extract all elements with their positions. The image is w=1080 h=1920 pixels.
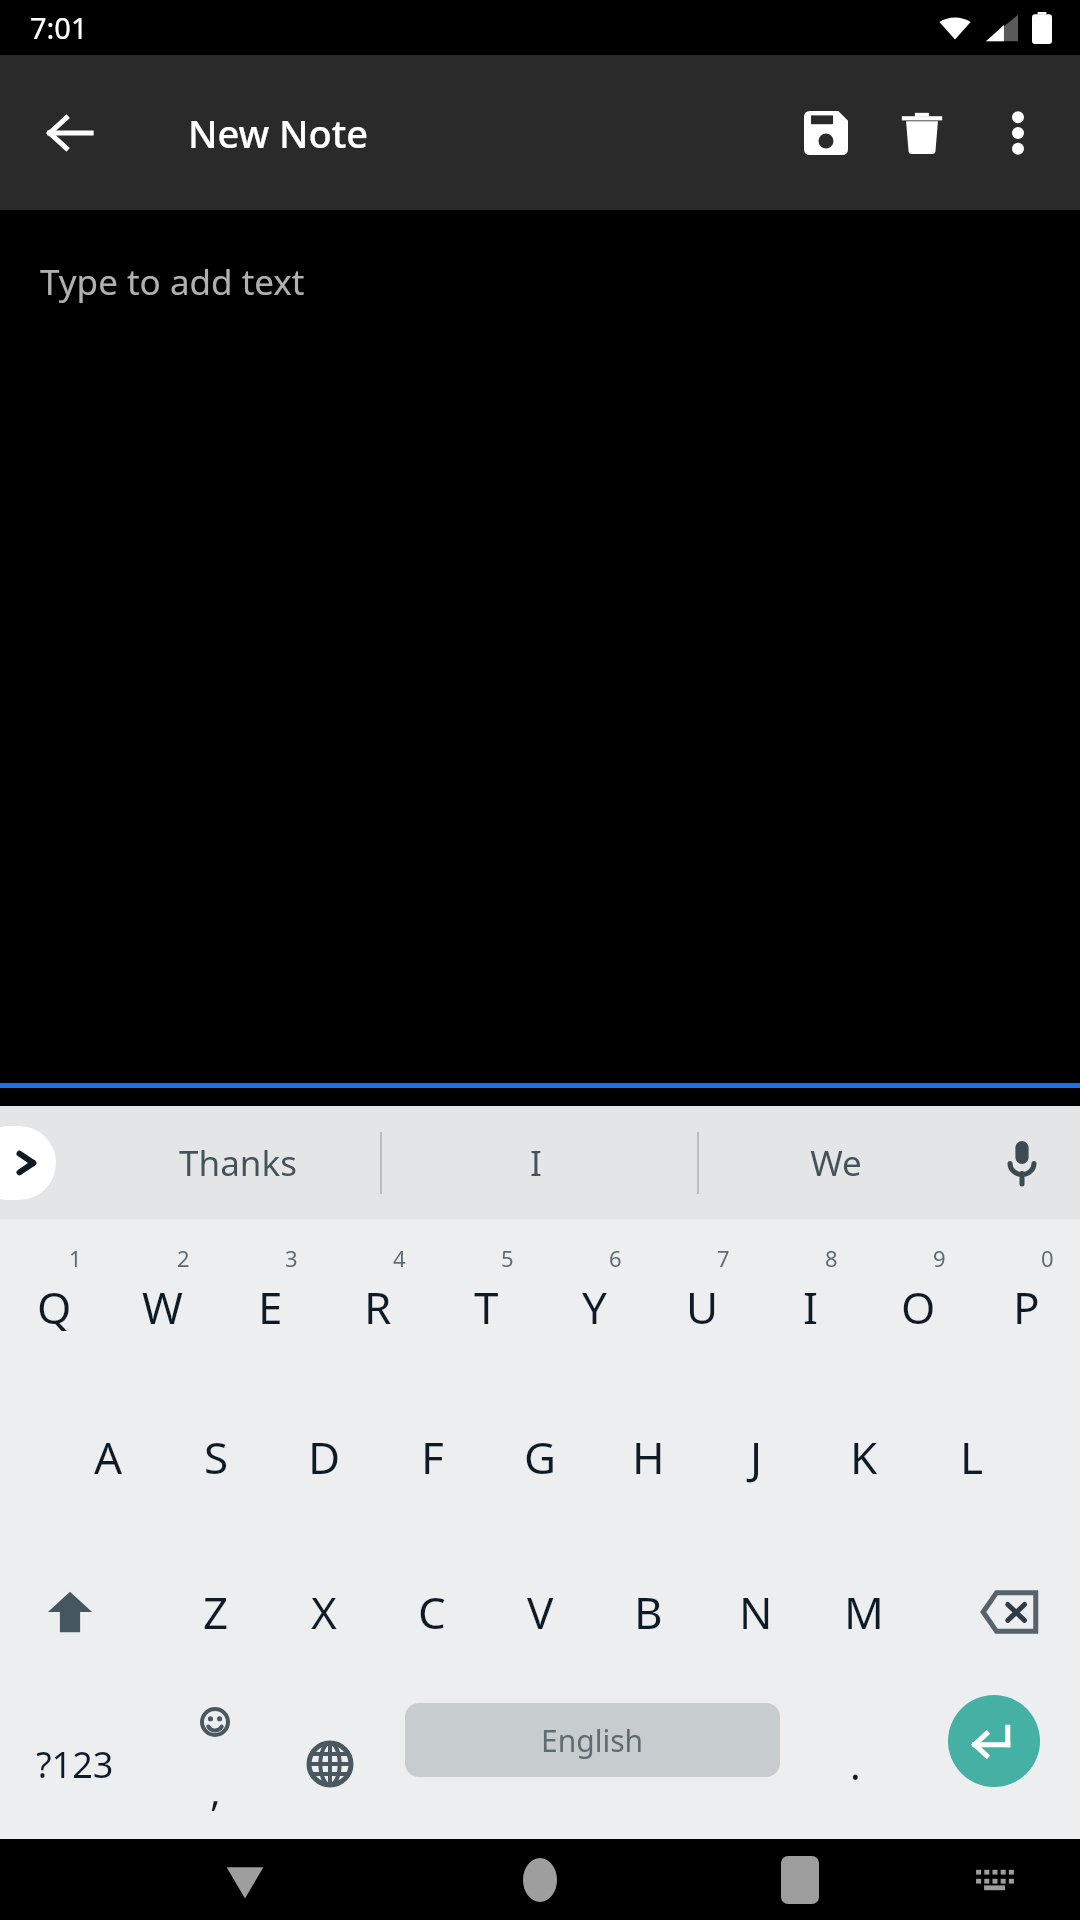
button[interactable]: 8 xyxy=(756,1219,864,1379)
staticText: Thanks xyxy=(179,1139,297,1187)
staticText: 8 xyxy=(825,1243,838,1273)
button[interactable]: S xyxy=(162,1379,270,1534)
staticText: 7:01 xyxy=(30,8,88,47)
staticText: X xyxy=(311,1582,337,1642)
staticText: A xyxy=(94,1427,123,1487)
button[interactable]: Expand toolbar xyxy=(0,1126,56,1200)
staticText: 6 xyxy=(609,1243,622,1273)
staticText: ?123 xyxy=(36,1740,114,1789)
button[interactable]: A xyxy=(54,1379,162,1534)
button[interactable]: Emoji and comma xyxy=(160,1689,270,1839)
staticText: 9 xyxy=(933,1243,946,1273)
button[interactable]: X xyxy=(270,1534,378,1689)
button[interactable]: Save xyxy=(778,85,874,181)
button[interactable]: Back xyxy=(30,93,110,173)
button[interactable]: B xyxy=(594,1534,702,1689)
button[interactable]: 7 xyxy=(648,1219,756,1379)
staticText: , xyxy=(210,1763,221,1817)
staticText: I xyxy=(530,1139,542,1187)
staticText: T xyxy=(474,1277,499,1337)
button[interactable]: Z xyxy=(162,1534,270,1689)
button[interactable]: Home xyxy=(490,1839,590,1920)
staticText: W xyxy=(142,1277,183,1337)
staticText: Type to add text xyxy=(40,258,305,306)
staticText: 4 xyxy=(393,1243,406,1273)
button[interactable]: . xyxy=(800,1689,910,1839)
button[interactable]: Voice input xyxy=(984,1125,1060,1201)
staticText: Z xyxy=(203,1582,229,1642)
staticText: M xyxy=(844,1582,884,1642)
staticText: English xyxy=(541,1720,644,1761)
button[interactable]: Recent apps xyxy=(750,1839,850,1920)
staticText: B xyxy=(634,1582,663,1642)
staticText: New Note xyxy=(188,107,369,159)
button[interactable]: Type to add text xyxy=(0,210,1080,1088)
button[interactable]: Switch keyboard xyxy=(950,1839,1040,1920)
staticText: 3 xyxy=(285,1243,298,1273)
button[interactable]: C xyxy=(378,1534,486,1689)
button[interactable]: More options xyxy=(970,85,1066,181)
button[interactable]: 2 xyxy=(108,1219,216,1379)
staticText: . xyxy=(850,1737,861,1791)
staticText: O xyxy=(901,1277,936,1337)
button[interactable]: G xyxy=(486,1379,594,1534)
staticText: 1 xyxy=(69,1243,82,1273)
button[interactable]: L xyxy=(918,1379,1026,1534)
button[interactable]: 5 xyxy=(432,1219,540,1379)
staticText: I xyxy=(803,1277,818,1337)
staticText: U xyxy=(686,1277,719,1337)
button[interactable]: N xyxy=(702,1534,810,1689)
button[interactable]: D xyxy=(270,1379,378,1534)
staticText: S xyxy=(204,1427,229,1487)
button[interactable]: Backspace xyxy=(940,1534,1080,1689)
button[interactable]: 4 xyxy=(324,1219,432,1379)
staticText: F xyxy=(421,1427,444,1487)
staticText: K xyxy=(850,1427,878,1487)
staticText: L xyxy=(960,1427,984,1487)
button[interactable]: 6 xyxy=(540,1219,648,1379)
staticText: 2 xyxy=(177,1243,190,1273)
staticText: 7 xyxy=(717,1243,730,1273)
button[interactable]: J xyxy=(702,1379,810,1534)
button[interactable]: Change keyboard language xyxy=(270,1689,390,1839)
button[interactable]: ?123 xyxy=(0,1689,150,1839)
button[interactable]: 9 xyxy=(864,1219,972,1379)
button[interactable]: Enter xyxy=(948,1695,1040,1787)
staticText: E xyxy=(258,1277,283,1337)
staticText: P xyxy=(1013,1277,1040,1337)
button[interactable]: I xyxy=(431,1106,641,1219)
staticText: J xyxy=(750,1427,763,1487)
staticText: D xyxy=(308,1427,341,1487)
button[interactable]: 0 xyxy=(972,1219,1080,1379)
button[interactable]: M xyxy=(810,1534,918,1689)
staticText: Q xyxy=(37,1277,72,1337)
staticText: 5 xyxy=(501,1243,514,1273)
staticText: C xyxy=(418,1582,446,1642)
button[interactable]: Shift xyxy=(0,1534,140,1689)
button[interactable]: Delete xyxy=(874,85,970,181)
staticText: H xyxy=(632,1427,665,1487)
staticText: G xyxy=(524,1427,557,1487)
button[interactable]: Hide keyboard xyxy=(195,1839,295,1920)
button[interactable]: 1 xyxy=(0,1219,108,1379)
button[interactable]: 3 xyxy=(216,1219,324,1379)
staticText: 0 xyxy=(1041,1243,1054,1273)
button[interactable]: We xyxy=(731,1106,941,1219)
staticText: We xyxy=(810,1139,862,1187)
staticText: R xyxy=(364,1277,392,1337)
button[interactable]: F xyxy=(378,1379,486,1534)
button[interactable]: K xyxy=(810,1379,918,1534)
button[interactable]: H xyxy=(594,1379,702,1534)
staticText: Y xyxy=(582,1277,607,1337)
staticText: V xyxy=(527,1582,554,1642)
button[interactable]: V xyxy=(486,1534,594,1689)
button[interactable]: Thanks xyxy=(133,1106,343,1219)
button[interactable]: English xyxy=(405,1703,780,1777)
staticText: N xyxy=(739,1582,773,1642)
